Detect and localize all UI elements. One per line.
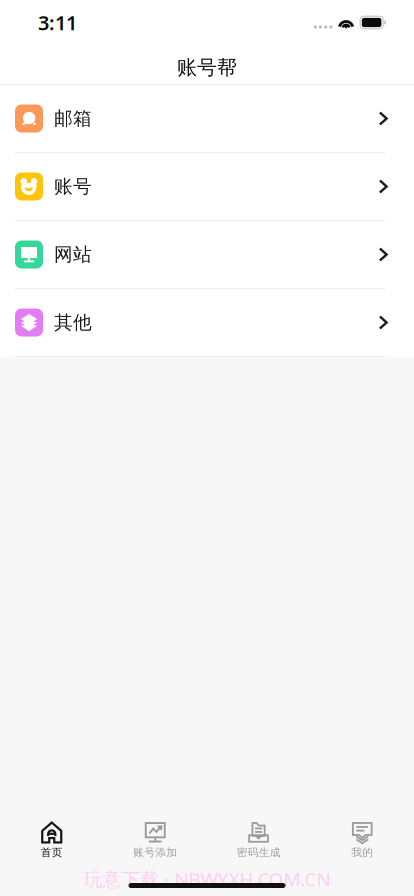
- staticText: 我的: [351, 846, 373, 859]
- button[interactable]: 账号添加: [103, 818, 207, 862]
- button[interactable]: 首页: [0, 818, 103, 862]
- staticText: 密码生成: [237, 846, 281, 859]
- button[interactable]: 邮箱: [0, 85, 414, 152]
- button[interactable]: 我的: [310, 818, 414, 862]
- staticText: 账号: [54, 175, 92, 198]
- button[interactable]: 密码生成: [207, 818, 310, 862]
- staticText: 首页: [41, 846, 63, 859]
- staticText: 玩意下载 · NBWYXH.COM.CN: [83, 867, 330, 891]
- staticText: 其他: [54, 311, 92, 334]
- staticText: 账号添加: [133, 846, 177, 859]
- staticText: 3:11: [38, 9, 77, 36]
- button[interactable]: 其他: [0, 289, 414, 356]
- button[interactable]: 网站: [0, 221, 414, 288]
- button[interactable]: 账号: [0, 153, 414, 220]
- staticText: 邮箱: [54, 107, 92, 130]
- staticText: 账号帮: [177, 55, 237, 80]
- staticText: 网站: [54, 243, 92, 266]
